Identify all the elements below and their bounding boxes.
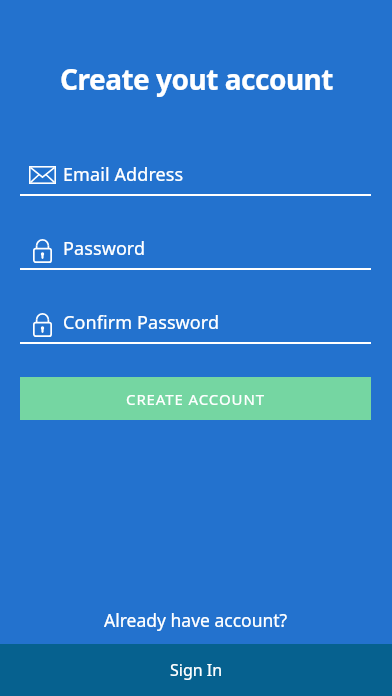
staticText: Email Address	[63, 162, 184, 187]
button[interactable]: Password	[20, 228, 371, 270]
staticText: Sign In	[170, 659, 223, 681]
staticText: Password	[63, 236, 146, 261]
staticText: CREATE ACCOUNT	[126, 389, 265, 409]
staticText: Create yout account	[60, 60, 333, 98]
button[interactable]: Sign In	[0, 644, 392, 696]
button[interactable]: Confirm Password	[20, 302, 371, 344]
button[interactable]: Email Address	[20, 154, 371, 196]
staticText: Already have account?	[104, 608, 288, 632]
button[interactable]: Already have account?	[0, 606, 392, 634]
staticText: Confirm Password	[63, 310, 220, 335]
button[interactable]: CREATE ACCOUNT	[20, 377, 371, 420]
